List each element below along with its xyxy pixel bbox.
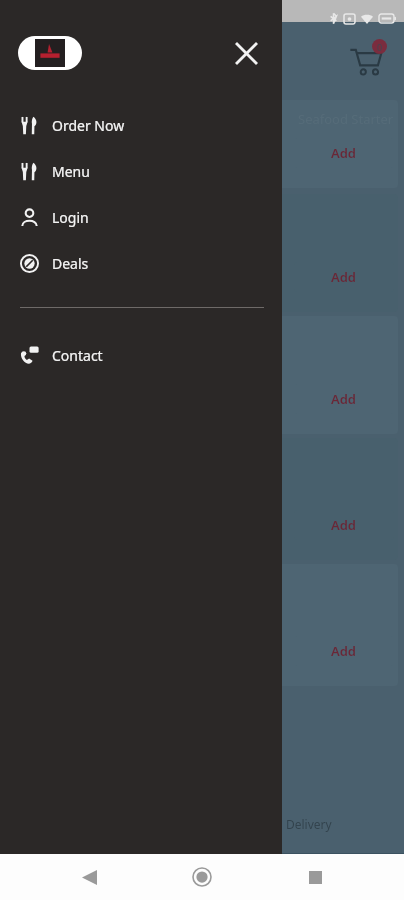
button[interactable]: Back <box>65 854 113 900</box>
button[interactable]: Add <box>294 262 394 292</box>
button[interactable]: Contact <box>0 332 282 378</box>
button[interactable]: Menu <box>0 148 282 194</box>
button[interactable]: Add <box>6 438 398 560</box>
staticText: 0 <box>377 41 383 53</box>
button[interactable]: Add <box>6 564 398 686</box>
button[interactable]: Add <box>6 194 398 312</box>
staticText: Delivery <box>286 816 332 832</box>
button[interactable]: Deals <box>0 240 282 286</box>
button[interactable]: Add <box>294 636 394 666</box>
staticText: Add <box>331 642 357 660</box>
staticText: Add <box>331 268 357 286</box>
staticText: Order Now <box>52 116 125 135</box>
staticText: Contact <box>52 346 103 365</box>
button[interactable]: Seafood Starter <box>6 100 398 188</box>
button[interactable]: Add <box>6 316 398 434</box>
button[interactable]: Order Now <box>0 102 282 148</box>
button[interactable]: Cart <box>344 38 388 82</box>
button[interactable]: Recent apps <box>291 854 339 900</box>
staticText: Add <box>331 516 357 534</box>
staticText: Add <box>331 144 357 162</box>
button[interactable]: Close menu <box>226 33 266 73</box>
button[interactable]: Home <box>178 854 226 900</box>
button[interactable]: Logo <box>18 36 82 70</box>
button[interactable]: Add <box>294 384 394 414</box>
button[interactable]: Login <box>0 194 282 240</box>
staticText: Menu <box>52 162 90 181</box>
staticText: Add <box>331 390 357 408</box>
button[interactable]: Add <box>294 138 394 168</box>
staticText: Login <box>52 208 89 227</box>
button[interactable]: Add <box>294 510 394 540</box>
staticText: Deals <box>52 254 89 273</box>
